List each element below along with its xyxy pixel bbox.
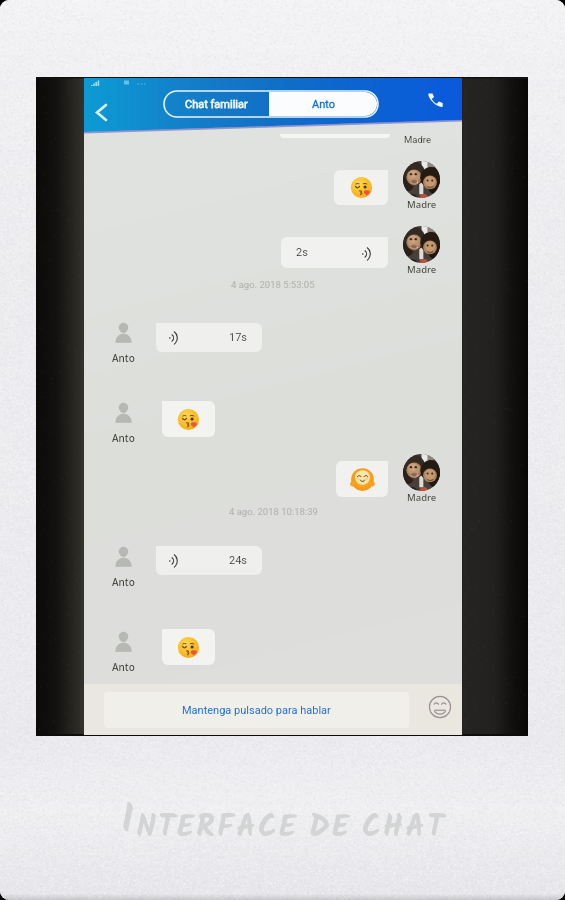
button[interactable]: 2s — [281, 237, 388, 268]
button[interactable]: Anto — [269, 91, 378, 117]
staticText: Anto — [112, 660, 135, 674]
button[interactable]: 17s — [156, 323, 262, 352]
staticText: A — [405, 804, 425, 853]
staticText: D — [309, 804, 330, 853]
button[interactable]: 24s — [156, 546, 262, 575]
staticText: A — [236, 804, 256, 853]
staticText: T — [158, 804, 175, 853]
staticText: F — [217, 804, 234, 853]
staticText: Mantenga pulsado para hablar — [182, 704, 331, 717]
button[interactable] — [162, 629, 215, 665]
button[interactable]: Call — [423, 88, 447, 112]
staticText: T — [427, 804, 444, 853]
button[interactable]: Back — [89, 99, 115, 126]
staticText: Madre — [407, 263, 437, 276]
staticText: C — [362, 804, 381, 853]
button[interactable] — [334, 170, 388, 205]
staticText: 4 ago. 2018 10:18:39 — [229, 506, 318, 517]
staticText: 24s — [229, 554, 248, 567]
staticText: Madre — [404, 134, 431, 145]
button[interactable]: Mantenga pulsado para hablar — [104, 692, 409, 728]
staticText: E — [332, 804, 349, 853]
staticText: Anto — [112, 431, 135, 445]
staticText: Anto — [112, 575, 135, 589]
staticText: Madre — [407, 198, 437, 211]
staticText: I — [121, 791, 134, 853]
staticText: Chat familiar — [185, 98, 248, 111]
staticText: N — [136, 804, 156, 853]
button[interactable] — [336, 461, 388, 497]
staticText: E — [279, 804, 296, 853]
staticText: Madre — [407, 491, 437, 504]
staticText: 17s — [229, 331, 248, 344]
button[interactable]: Chat familiar — [164, 91, 269, 117]
button[interactable] — [162, 401, 215, 437]
staticText: 2s — [296, 246, 308, 259]
staticText: R — [196, 804, 215, 853]
staticText: Anto — [112, 351, 135, 365]
staticText: C — [258, 804, 277, 853]
staticText: E — [177, 804, 194, 853]
staticText: H — [383, 804, 403, 853]
staticText: 4 ago. 2018 5:53:05 — [231, 279, 315, 290]
staticText: Anto — [312, 98, 336, 111]
button[interactable]: Emoji — [428, 695, 452, 719]
